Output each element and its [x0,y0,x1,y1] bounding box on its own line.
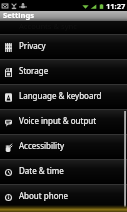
staticText: Settings [3,10,35,20]
button[interactable]: About phone [0,184,127,209]
staticText: Storage [19,65,49,76]
staticText: Language & keyboard [19,90,102,101]
staticText: About phone [19,190,68,201]
staticText: Voice input & output [19,115,97,126]
button[interactable]: Storage [0,59,127,84]
button[interactable]: Date & time [0,159,127,184]
other: USB [10,2,18,10]
staticText: 11:27 [106,1,126,11]
button[interactable]: Voice input & output [0,109,127,134]
staticText: Accounts & sync [19,21,77,31]
button[interactable]: Language & keyboard [0,84,127,109]
staticText: Privacy [19,40,46,51]
staticText: Accessibility [19,140,65,151]
button[interactable]: Accessibility [0,134,127,159]
staticText: Date & time [19,165,64,176]
other: Email [1,2,9,10]
other: Sync [19,2,27,10]
button[interactable]: Privacy [0,34,127,59]
